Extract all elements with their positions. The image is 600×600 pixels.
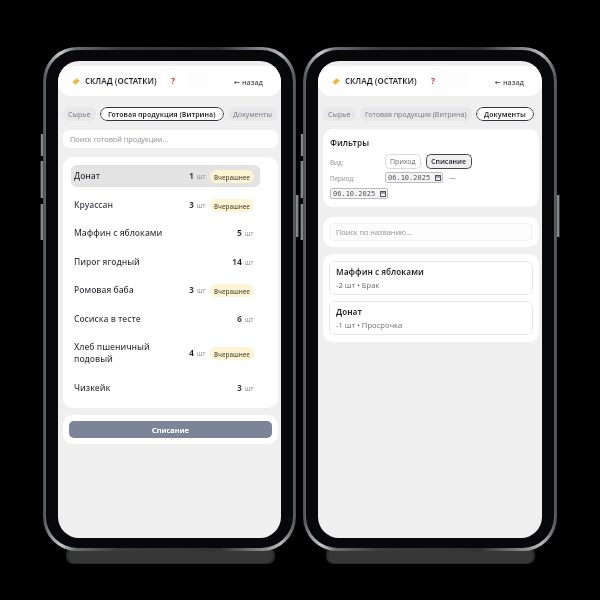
staticText: Сырье <box>328 109 351 119</box>
staticText: Списание <box>152 425 189 435</box>
button[interactable]: Круассан <box>71 194 260 216</box>
staticText: 14 <box>232 256 242 268</box>
button[interactable]: 06.10.2025 <box>330 188 388 199</box>
staticText: Вид: <box>330 158 344 166</box>
staticText: ← назад <box>495 77 525 87</box>
staticText: Вчерашнее <box>214 202 250 210</box>
staticText: Хлеб пшеничный подовый <box>74 341 189 365</box>
staticText: Документы <box>233 109 272 119</box>
button[interactable]: Сырье <box>63 107 96 121</box>
button[interactable]: Пирог ягодный <box>71 251 260 273</box>
staticText: 06.10.2025 <box>388 174 431 182</box>
staticText: шт <box>197 349 206 357</box>
button[interactable]: Списание <box>426 154 472 169</box>
button[interactable]: Документы <box>228 107 277 121</box>
staticText: Ромовая баба <box>74 284 189 296</box>
staticText: Донат <box>74 170 189 182</box>
staticText: шт <box>197 172 206 180</box>
staticText: -2 шт • Брак <box>336 280 380 290</box>
button[interactable]: 06.10.2025 <box>385 172 443 183</box>
staticText: Чизкейк <box>74 382 237 394</box>
button[interactable]: ← назад <box>488 74 532 89</box>
staticText: 3 <box>237 382 242 394</box>
staticText: Приход <box>390 157 416 167</box>
button[interactable]: Донат <box>71 165 260 187</box>
button[interactable]: Маффин с яблоками <box>71 222 260 244</box>
staticText: Вчерашнее <box>214 287 250 295</box>
button[interactable]: Документы <box>476 107 534 121</box>
staticText: Списание <box>431 157 467 166</box>
staticText: Круассан <box>74 199 189 211</box>
staticText: Маффин с яблоками <box>336 266 424 277</box>
staticText: Готовая продукция (Витрина) <box>365 109 467 119</box>
staticText: — <box>449 173 456 183</box>
button[interactable]: Help <box>162 72 185 90</box>
staticText: 6 <box>237 313 242 325</box>
button[interactable]: Поиск по названию... <box>330 223 532 241</box>
staticText: Пирог ягодный <box>74 256 232 268</box>
button[interactable]: Маффин с яблоками <box>329 261 533 295</box>
staticText: СКЛАД (ОСТАТКИ) <box>85 76 157 87</box>
button[interactable]: Сосиска в тесте <box>71 308 260 330</box>
staticText: Поиск по названию... <box>336 227 412 237</box>
button[interactable]: Help <box>422 72 445 90</box>
staticText: шт <box>197 286 206 294</box>
staticText: Донат <box>336 306 362 317</box>
staticText: ? <box>171 75 176 87</box>
staticText: Вчерашнее <box>214 173 250 181</box>
button[interactable]: ← назад <box>227 74 271 89</box>
staticText: СКЛАД (ОСТАТКИ) <box>345 76 417 87</box>
button[interactable]: Хлеб пшеничный подовый <box>71 337 260 369</box>
button[interactable]: Готовая продукция (Витрина) <box>100 107 224 121</box>
staticText: 06.10.2025 <box>333 190 376 198</box>
staticText: ← назад <box>234 77 264 87</box>
staticText: Сосиска в тесте <box>74 313 237 325</box>
staticText: 3 <box>189 199 194 211</box>
button[interactable]: Списание <box>69 421 272 438</box>
staticText: Маффин с яблоками <box>74 227 237 239</box>
button[interactable]: Сырье <box>323 107 356 121</box>
staticText: шт <box>197 201 206 209</box>
staticText: Фильтры <box>330 137 370 148</box>
staticText: Документы <box>484 110 526 119</box>
staticText: шт <box>245 258 254 266</box>
staticText: ? <box>431 75 436 87</box>
staticText: шт <box>245 315 254 323</box>
staticText: шт <box>245 229 254 237</box>
staticText: шт <box>245 384 254 392</box>
staticText: Период: <box>330 174 355 182</box>
button[interactable]: Поиск готовой продукции... <box>63 130 278 148</box>
staticText: -1 шт • Просрочка <box>336 320 403 330</box>
staticText: 3 <box>189 284 194 296</box>
staticText: 4 <box>189 347 194 359</box>
staticText: Поиск готовой продукции... <box>70 134 169 144</box>
button[interactable]: Ромовая баба <box>71 279 260 301</box>
button[interactable]: Чизкейк <box>71 377 260 399</box>
staticText: Вчерашнее <box>214 350 250 358</box>
staticText: Готовая продукция (Витрина) <box>108 110 216 119</box>
button[interactable]: Донат <box>329 301 533 335</box>
button[interactable]: Готовая продукция (Витрина) <box>360 107 472 121</box>
button[interactable]: Приход <box>385 154 421 169</box>
staticText: 5 <box>237 227 242 239</box>
staticText: 1 <box>189 170 194 182</box>
staticText: Сырье <box>68 109 91 119</box>
